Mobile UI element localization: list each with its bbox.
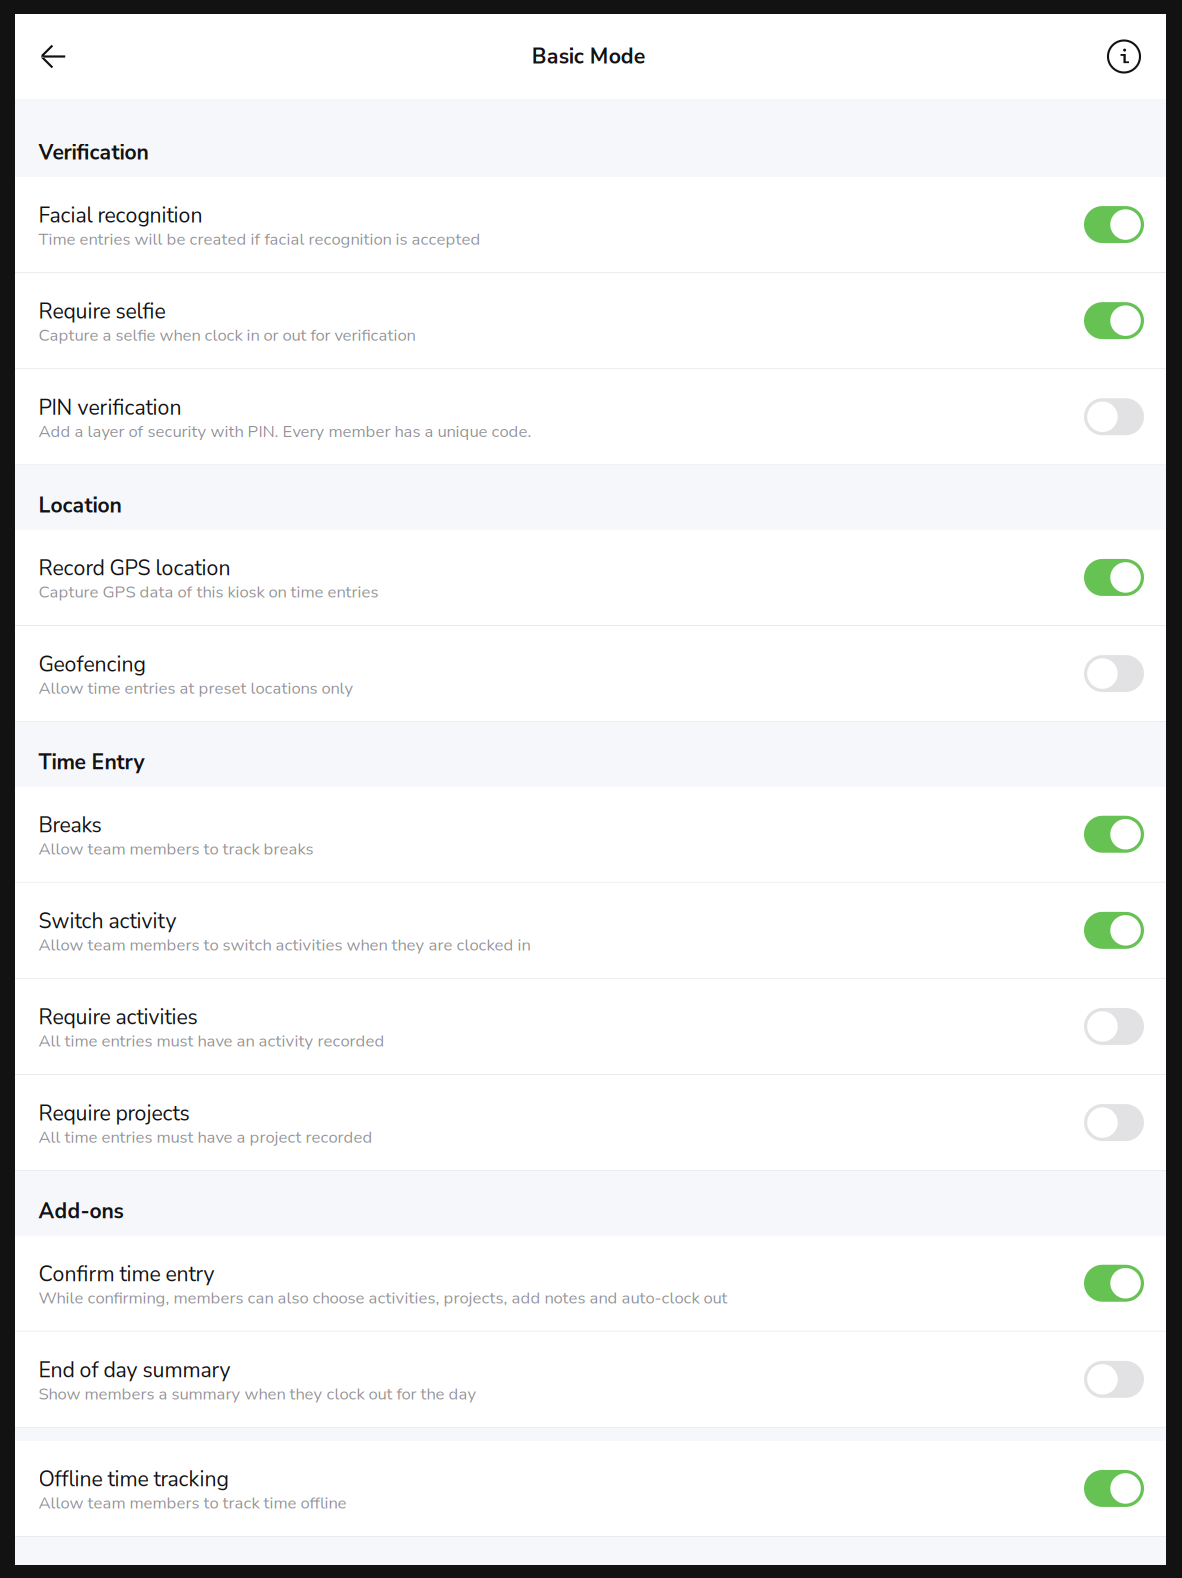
- staticText: Breaks: [38, 811, 101, 840]
- staticText: Capture GPS data of this kiosk on time e…: [38, 581, 378, 603]
- button[interactable]: PIN verification: [15, 369, 1166, 465]
- staticText: Switch activity: [38, 907, 176, 936]
- staticText: All time entries must have a project rec…: [38, 1126, 372, 1148]
- staticText: Allow team members to track time offline: [38, 1492, 346, 1514]
- staticText: Record GPS location: [38, 554, 230, 583]
- button[interactable]: Information: [1100, 32, 1148, 80]
- staticText: End of day summary: [38, 1356, 230, 1385]
- button[interactable]: Confirm time entry: [15, 1236, 1166, 1332]
- staticText: Time entries will be created if facial r…: [38, 228, 480, 250]
- staticText: PIN verification: [38, 393, 181, 422]
- staticText: Show members a summary when they clock o…: [38, 1383, 476, 1405]
- staticText: Allow team members to switch activities …: [38, 934, 530, 956]
- staticText: Location: [38, 491, 121, 520]
- staticText: Geofencing: [38, 650, 145, 679]
- button[interactable]: Breaks: [15, 787, 1166, 883]
- button[interactable]: Require selfie: [15, 273, 1166, 369]
- staticText: Allow time entries at preset locations o…: [38, 677, 353, 699]
- staticText: Offline time tracking: [38, 1465, 228, 1494]
- staticText: Require projects: [38, 1099, 189, 1128]
- staticText: All time entries must have an activity r…: [38, 1030, 384, 1052]
- button[interactable]: Switch activity: [15, 883, 1166, 979]
- staticText: Require selfie: [38, 297, 165, 326]
- button[interactable]: Facial recognition: [15, 177, 1166, 273]
- button[interactable]: Geofencing: [15, 626, 1166, 722]
- staticText: Verification: [38, 138, 148, 167]
- staticText: Facial recognition: [38, 201, 202, 230]
- button[interactable]: Offline time tracking: [15, 1441, 1166, 1537]
- button[interactable]: Require projects: [15, 1075, 1166, 1171]
- staticText: Confirm time entry: [38, 1260, 214, 1289]
- staticText: Require activities: [38, 1003, 197, 1032]
- staticText: Allow team members to track breaks: [38, 838, 313, 860]
- staticText: Add-ons: [38, 1197, 123, 1226]
- staticText: Time Entry: [38, 748, 144, 777]
- button[interactable]: Record GPS location: [15, 530, 1166, 626]
- staticText: Basic Mode: [532, 42, 646, 71]
- button[interactable]: Require activities: [15, 979, 1166, 1075]
- staticText: While confirming, members can also choos…: [38, 1287, 727, 1309]
- button[interactable]: End of day summary: [15, 1332, 1166, 1428]
- staticText: Add a layer of security with PIN. Every …: [38, 420, 531, 443]
- staticText: Capture a selfie when clock in or out fo…: [38, 324, 415, 347]
- button[interactable]: Back: [29, 32, 77, 80]
